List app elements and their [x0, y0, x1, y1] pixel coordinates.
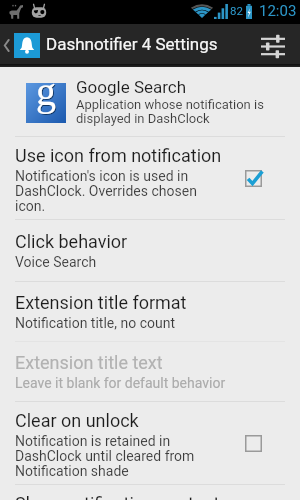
button[interactable]: Clear on unlock: [0, 402, 300, 484]
staticText: Voice Search: [15, 254, 97, 270]
staticText: Use icon from notification: [15, 145, 222, 166]
staticText: Notification is retained in DashClock un…: [15, 433, 227, 480]
staticText: Notification title, no count: [15, 315, 175, 331]
staticText: g: [36, 69, 56, 113]
button[interactable]: Extension title text: [0, 342, 300, 401]
staticText: Leave it blank for default behavior: [15, 375, 226, 391]
staticText: 12:03: [259, 2, 297, 20]
staticText: Show notification content: [15, 493, 220, 500]
button[interactable]: Clear on unlock: [236, 426, 270, 460]
staticText: g: [37, 70, 57, 114]
button[interactable]: Use icon from notification: [0, 137, 300, 219]
button[interactable]: Settings: [251, 24, 295, 67]
staticText: Extension title format: [15, 292, 187, 313]
button[interactable]: Show notification content: [0, 485, 300, 500]
staticText: Application whose notification is displa…: [76, 97, 285, 127]
staticText: Clear on unlock: [15, 410, 139, 431]
staticText: Dashnotifier 4 Settings: [46, 34, 218, 54]
button[interactable]: g: [0, 68, 300, 136]
button[interactable]: Use icon from notification: [236, 161, 270, 195]
staticText: 82: [230, 4, 243, 17]
button[interactable]: Extension title format: [0, 282, 300, 341]
staticText: Google Search: [76, 77, 187, 97]
button[interactable]: Click behavior: [0, 220, 300, 281]
staticText: Extension title text: [15, 352, 163, 373]
button[interactable]: Navigate up: [0, 24, 40, 67]
staticText: Notification's icon is used in DashClock…: [15, 168, 227, 215]
staticText: Click behavior: [15, 231, 128, 252]
